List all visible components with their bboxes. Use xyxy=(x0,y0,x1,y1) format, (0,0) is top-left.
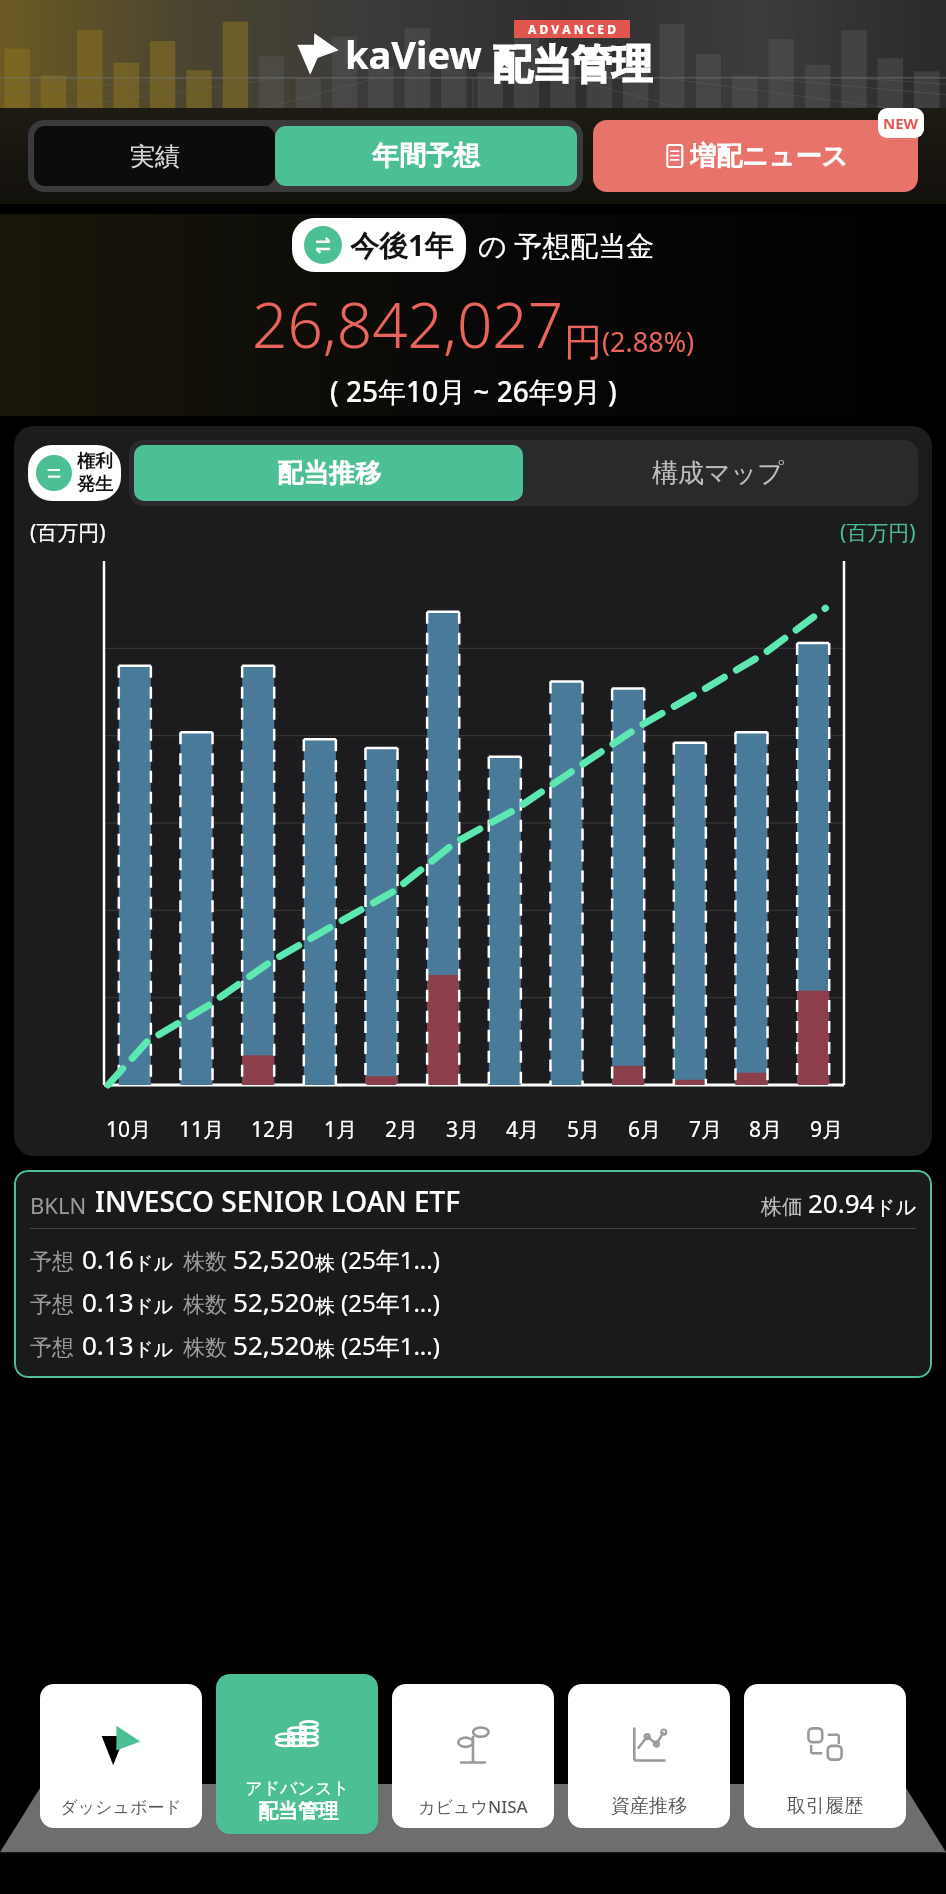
staticText: (25年1...) xyxy=(341,1329,440,1362)
staticText: (25年1...) xyxy=(341,1243,440,1276)
staticText: 11月 xyxy=(179,1115,225,1144)
staticText: 株数 xyxy=(183,1334,227,1362)
staticText: ダッシュボード xyxy=(60,1797,182,1818)
staticText: 予想 xyxy=(30,1248,74,1276)
staticText: (25年1...) xyxy=(341,1286,440,1319)
staticText: 取引履歴 xyxy=(787,1794,863,1818)
staticText: 株数 xyxy=(183,1291,227,1319)
button[interactable]: 今後1年 xyxy=(304,225,454,265)
staticText: 4月 xyxy=(506,1115,540,1144)
staticText: 配当管理 xyxy=(258,1799,338,1824)
staticText: カビュウNISA xyxy=(418,1795,528,1818)
button[interactable]: 実績 xyxy=(34,126,275,186)
staticText: 10月 xyxy=(106,1115,152,1144)
staticText: の 予想配当金 xyxy=(478,226,654,264)
staticText: 9月 xyxy=(810,1115,844,1144)
staticText: 7月 xyxy=(689,1115,723,1144)
button[interactable]: 権利 xyxy=(36,450,113,496)
staticText: 予想 xyxy=(30,1291,74,1319)
staticText: 0.13 xyxy=(82,1327,134,1362)
staticText: 52,520 xyxy=(233,1284,315,1319)
staticText: ( 25年10月 ~ 26年9月 ) xyxy=(330,372,617,410)
button[interactable]: ダッシュボード xyxy=(40,1684,202,1828)
staticText: 配当管理 xyxy=(492,39,652,89)
button[interactable]: 構成マップ xyxy=(523,445,913,501)
staticText: 株 xyxy=(315,1294,335,1319)
staticText: A D V A N C E D xyxy=(528,21,616,37)
staticText: 株数 xyxy=(183,1248,227,1276)
button[interactable]: 増配ニュース xyxy=(593,120,918,192)
button[interactable]: 取引履歴 xyxy=(744,1684,906,1828)
staticText: kaView xyxy=(345,28,482,80)
staticText: 株価 xyxy=(761,1194,803,1220)
staticText: 円 xyxy=(564,318,602,366)
staticText: 8月 xyxy=(749,1115,783,1144)
staticText: 52,520 xyxy=(233,1241,315,1276)
staticText: 3月 xyxy=(446,1115,480,1144)
staticText: (百万円) xyxy=(30,518,106,547)
staticText: 株 xyxy=(315,1251,335,1276)
staticText: 年間予想 xyxy=(372,139,480,173)
staticText: 0.13 xyxy=(82,1284,134,1319)
staticText: ドル xyxy=(134,1252,173,1276)
staticText: 1月 xyxy=(324,1115,358,1144)
other: 資産推移 xyxy=(626,1721,672,1767)
staticText: 6月 xyxy=(628,1115,662,1144)
staticText: 発生 xyxy=(77,473,113,496)
staticText: 0.16 xyxy=(82,1241,134,1276)
staticText: ドル xyxy=(134,1295,173,1319)
staticText: アドバンスト xyxy=(245,1778,350,1799)
staticText: 構成マップ xyxy=(652,457,784,490)
staticText: 資産推移 xyxy=(611,1794,687,1818)
staticText: 5月 xyxy=(567,1115,601,1144)
staticText: 26,842,027 xyxy=(252,282,564,366)
staticText: 増配ニュース xyxy=(690,140,848,173)
other: カビュウNISA xyxy=(450,1722,496,1768)
other: 取引履歴 xyxy=(802,1721,848,1767)
staticText: 予想 xyxy=(30,1334,74,1362)
button[interactable]: 年間予想 xyxy=(275,126,577,186)
staticText: (百万円) xyxy=(840,518,916,547)
staticText: 2月 xyxy=(385,1115,419,1144)
staticText: INVESCO SENIOR LOAN ETF xyxy=(95,1182,761,1220)
staticText: 権利 xyxy=(77,450,113,473)
button[interactable]: カビュウNISA xyxy=(392,1684,554,1828)
other: ダッシュボード xyxy=(98,1723,144,1769)
other: アドバンスト配当管理 xyxy=(274,1708,320,1754)
staticText: 今後1年 xyxy=(350,225,454,265)
button[interactable]: 配当推移 xyxy=(134,445,523,501)
staticText: BKLN xyxy=(30,1190,87,1220)
staticText: 実績 xyxy=(130,141,180,172)
staticText: 52,520 xyxy=(233,1327,315,1362)
button[interactable]: 資産推移 xyxy=(568,1684,730,1828)
staticText: ドル xyxy=(875,1195,916,1220)
staticText: 配当推移 xyxy=(277,457,381,490)
staticText: 株 xyxy=(315,1337,335,1362)
staticText: NEW xyxy=(883,113,919,133)
staticText: ドル xyxy=(134,1338,173,1362)
staticText: (2.88%) xyxy=(602,323,695,360)
staticText: 12月 xyxy=(251,1115,297,1144)
button[interactable]: アドバンスト配当管理 xyxy=(216,1674,378,1834)
staticText: 20.94 xyxy=(808,1185,875,1220)
